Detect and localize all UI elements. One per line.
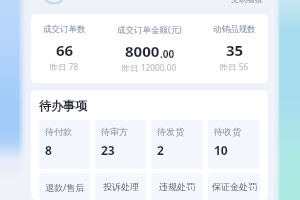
staticText: 交易看板 — [231, 0, 263, 4]
staticText: 66 — [56, 40, 74, 60]
staticText: 昨日 78 — [50, 61, 79, 72]
staticText: 成交订单数 — [43, 24, 86, 35]
staticText: 待收货 — [214, 126, 241, 137]
staticText: 违规处罚 — [159, 181, 195, 192]
staticText: 35 — [226, 40, 244, 60]
staticText: 8000 — [125, 41, 160, 61]
staticText: 成交订单金额(元) — [117, 24, 182, 36]
button[interactable]: 保证金处罚 — [208, 173, 260, 200]
button[interactable]: 待审方 — [95, 120, 146, 169]
staticText: 8 — [45, 142, 52, 158]
button[interactable]: 退款/售后 — [39, 173, 90, 200]
button[interactable]: 待付款 — [39, 120, 90, 169]
staticText: 退款/售后 — [45, 181, 85, 193]
staticText: 23 — [101, 142, 115, 158]
staticText: 投诉处理 — [103, 181, 139, 192]
staticText: 昨日 56 — [220, 61, 249, 72]
staticText: 待付款 — [45, 126, 72, 137]
staticText: 2 — [157, 142, 164, 158]
button[interactable]: 待发货 — [151, 120, 203, 169]
staticText: 10 — [214, 142, 228, 158]
staticText: 待办事项 — [39, 98, 87, 113]
staticText: 待发货 — [157, 126, 184, 137]
button[interactable]: 违规处罚 — [151, 173, 203, 200]
button[interactable]: 投诉处理 — [95, 173, 146, 200]
staticText: 保证金处罚 — [212, 181, 257, 192]
button[interactable]: 待收货 — [208, 120, 260, 169]
staticText: 待审方 — [101, 126, 128, 137]
staticText: 昨日 12000.00 — [122, 62, 177, 73]
staticText: 动销品规数 — [213, 24, 256, 35]
staticText: .00 — [160, 47, 175, 61]
